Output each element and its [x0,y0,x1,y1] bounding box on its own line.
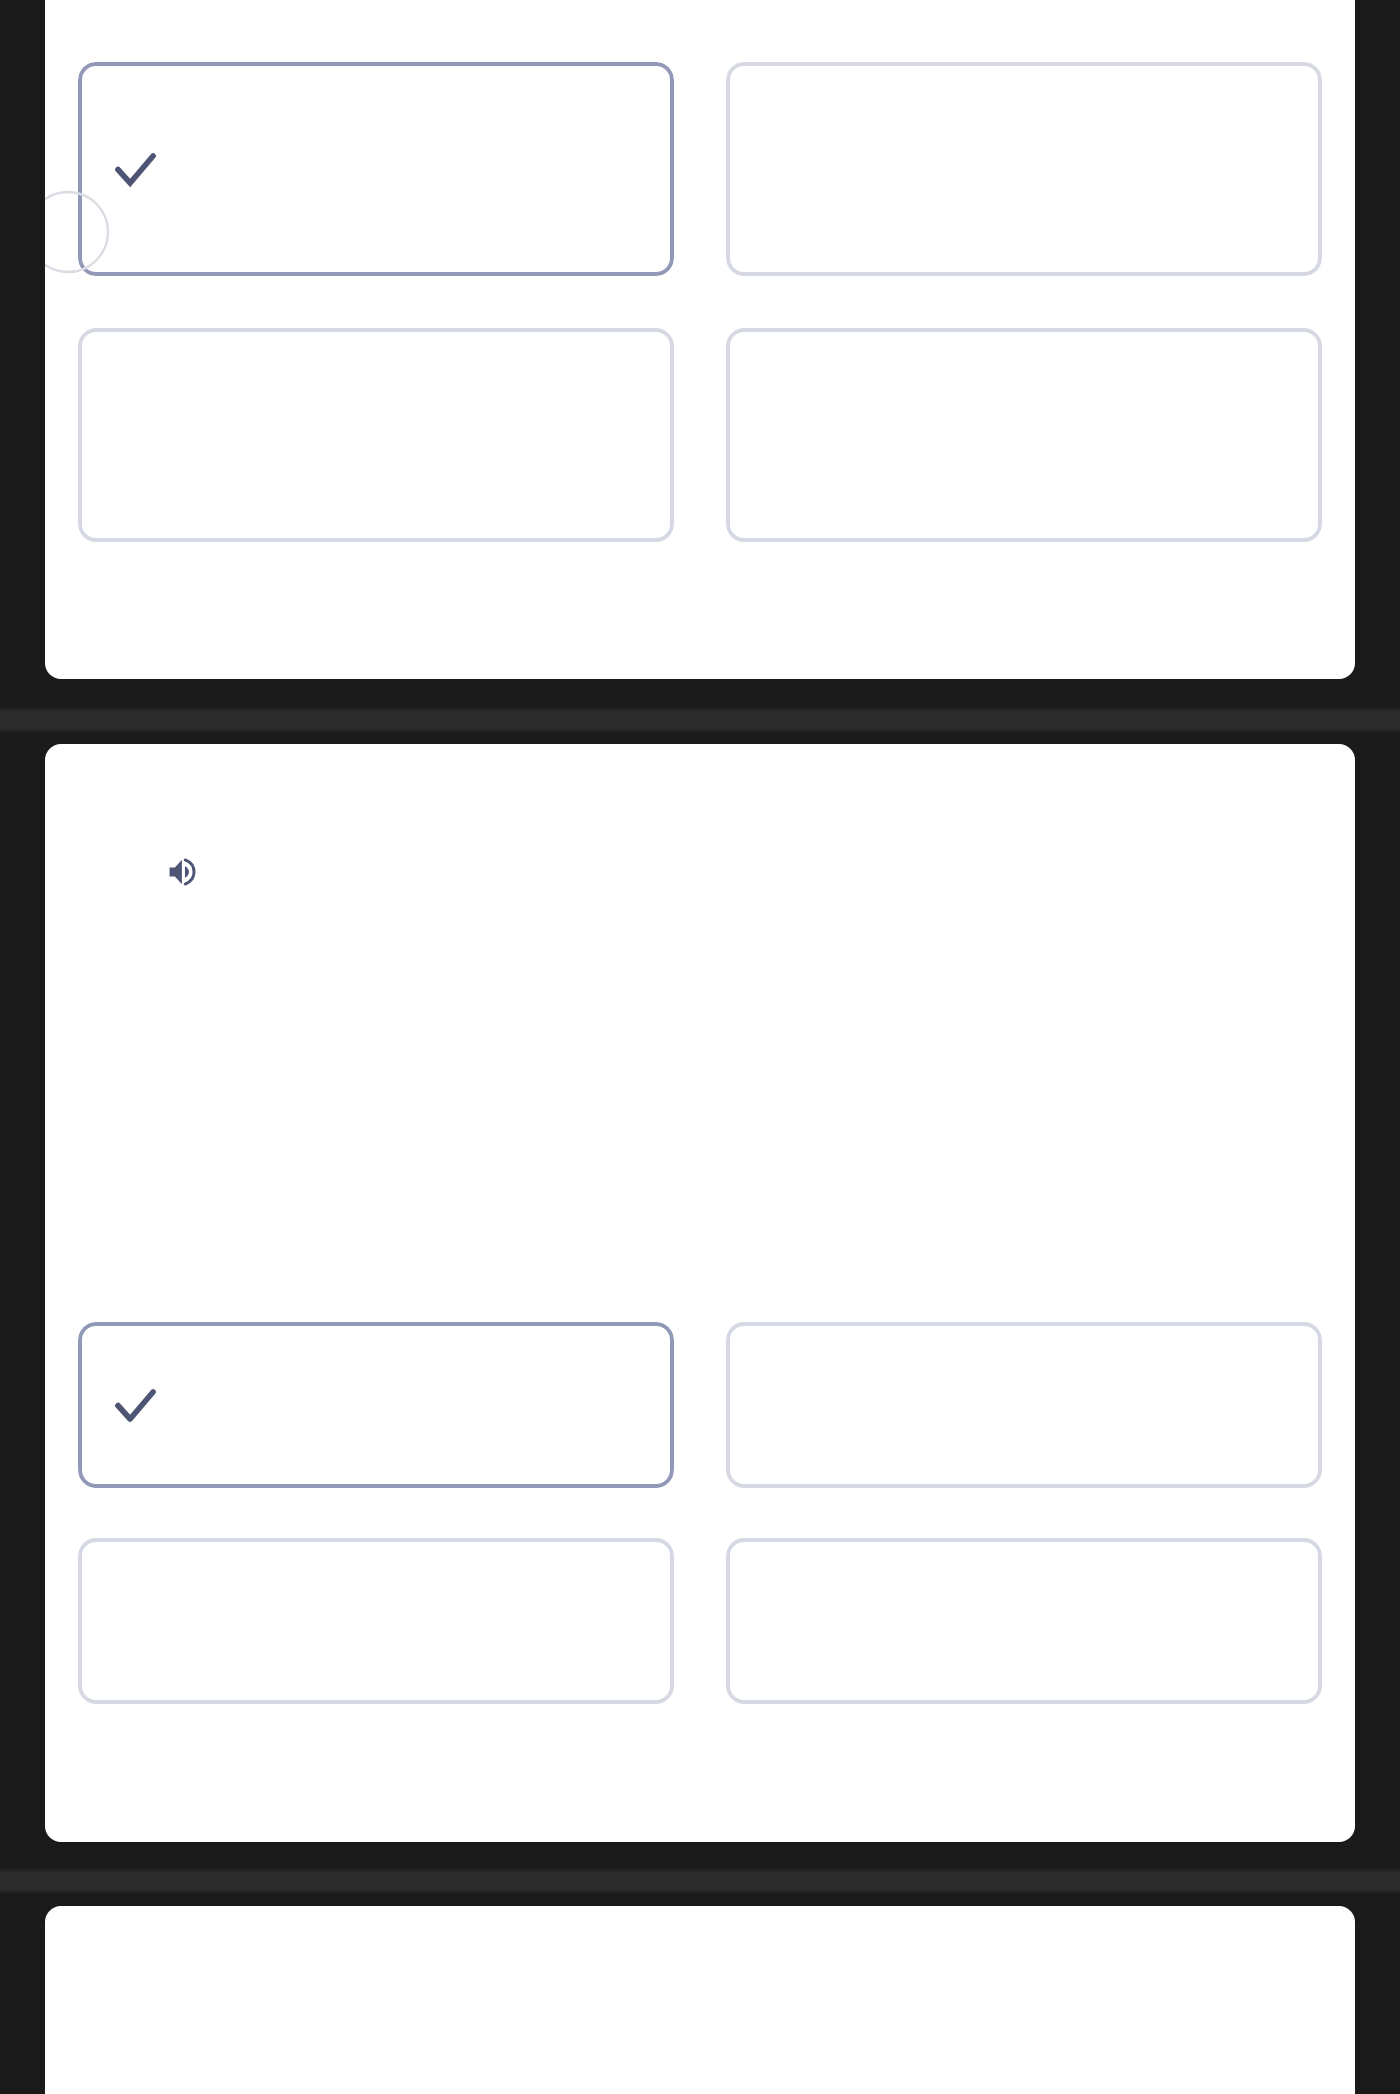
button[interactable]: Answer option 2 [726,62,1322,276]
button[interactable]: Answer option 2 [726,1322,1322,1488]
button[interactable]: Answer option 1 [78,62,674,276]
button[interactable]: Answer option 3 [78,328,674,542]
button[interactable]: Answer option 1 [78,1322,674,1488]
button[interactable]: Answer option 4 [726,328,1322,542]
button[interactable]: Play audio [147,836,219,908]
button[interactable]: Answer option 4 [726,1538,1322,1704]
button[interactable]: Answer option 3 [78,1538,674,1704]
